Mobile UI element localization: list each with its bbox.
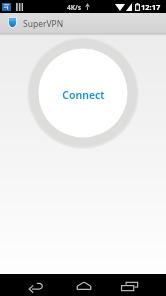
- staticText: SuperVPN: [23, 18, 64, 30]
- staticText: 4K/s: [67, 3, 81, 12]
- staticText: Connect: [62, 88, 105, 102]
- button[interactable]: Connect: [27, 37, 139, 149]
- button[interactable]: Back: [18, 274, 54, 296]
- button[interactable]: Recent apps: [111, 274, 147, 296]
- staticText: 12:17: [141, 2, 161, 12]
- button[interactable]: Home: [66, 274, 102, 296]
